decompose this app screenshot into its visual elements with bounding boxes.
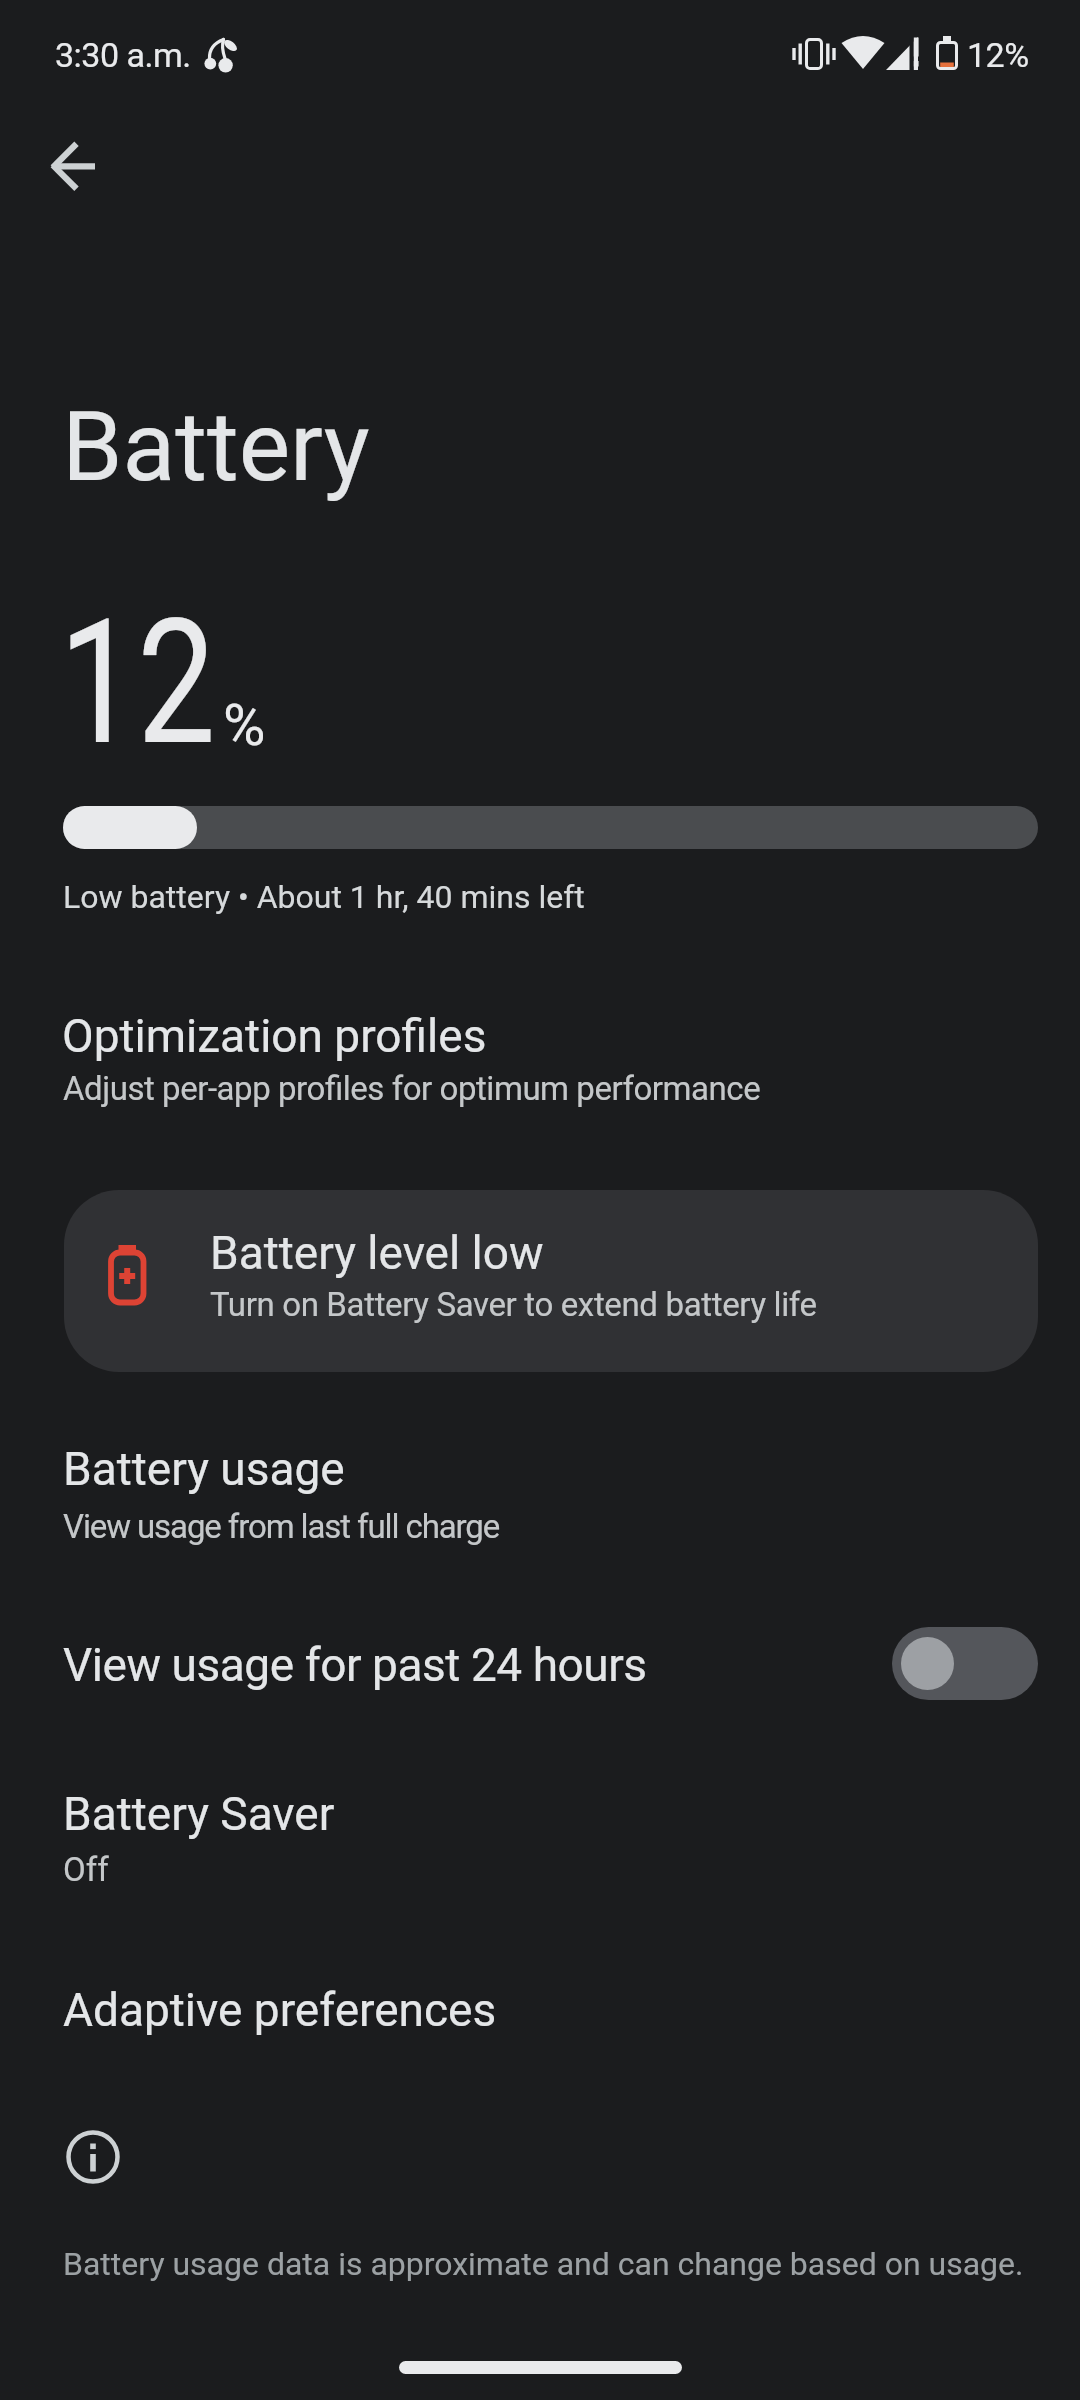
button[interactable]: Battery Saver <box>0 1770 1080 1910</box>
staticText: Off <box>63 1850 109 1889</box>
staticText: 3:30 a.m. <box>55 35 191 75</box>
staticText: Battery level low <box>210 1226 544 1280</box>
button[interactable]: Battery level low <box>64 1190 1038 1372</box>
button[interactable]: Adaptive preferences <box>0 1955 1080 2055</box>
button[interactable]: Battery usage <box>0 1425 1080 1575</box>
staticText: View usage for past 24 hours <box>63 1638 647 1692</box>
staticText: Turn on Battery Saver to extend battery … <box>210 1285 817 1324</box>
staticText: Adaptive preferences <box>63 1983 497 2037</box>
staticText: Battery usage <box>63 1442 345 1496</box>
staticText: 12% <box>967 35 1029 75</box>
staticText: Low battery • About 1 hr, 40 mins left <box>63 878 585 916</box>
staticText: Battery usage data is approximate and ca… <box>63 2245 1024 2283</box>
staticText: Optimization profiles <box>62 1009 487 1063</box>
staticText: Battery <box>62 390 370 504</box>
staticText: Battery Saver <box>63 1787 335 1841</box>
button[interactable]: View usage for past 24 hours <box>0 1608 1080 1720</box>
button[interactable] <box>51 142 99 190</box>
staticText: Adjust per-app profiles for optimum perf… <box>63 1069 761 1108</box>
staticText: % <box>223 691 266 759</box>
staticText: 12 <box>59 582 216 784</box>
staticText: View usage from last full charge <box>63 1507 500 1546</box>
